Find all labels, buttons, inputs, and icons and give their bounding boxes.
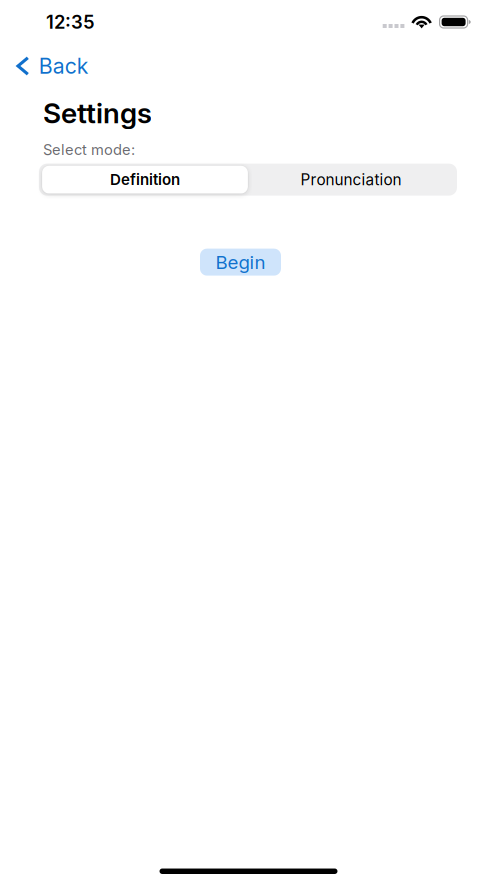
button[interactable]: Back [0,51,101,81]
staticText: Back [39,53,89,79]
staticText: Select mode: [43,141,135,159]
button[interactable]: Begin [200,249,281,276]
staticText: Begin [215,251,265,273]
staticText: Definition [110,170,180,189]
staticText: Settings [43,96,152,130]
staticText: Pronunciation [300,170,401,189]
staticText: 12:35 [46,11,95,33]
button[interactable]: Definition [42,166,248,194]
button[interactable]: Pronunciation [248,166,454,194]
